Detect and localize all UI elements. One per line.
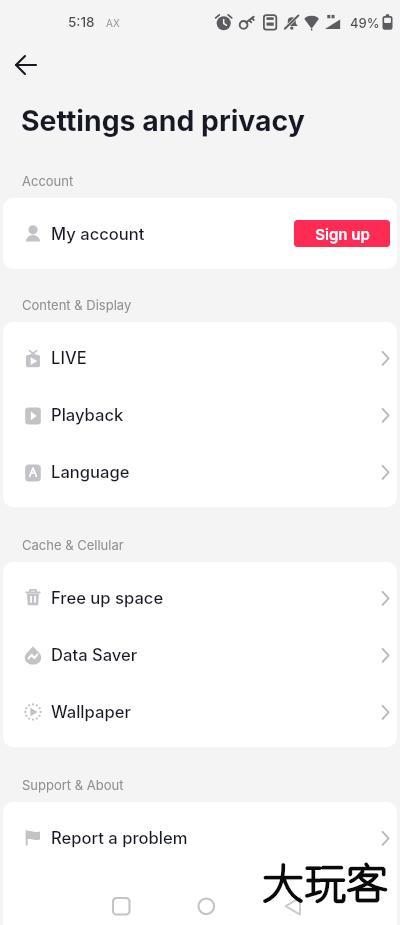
staticText: Settings and privacy xyxy=(21,103,305,137)
staticText: 大玩客 xyxy=(262,858,389,908)
button[interactable]: LIVE xyxy=(3,329,397,386)
button[interactable]: Report a problem xyxy=(3,809,397,866)
staticText: Language xyxy=(51,462,130,482)
button[interactable]: Free up space xyxy=(3,569,397,626)
staticText: Data Saver xyxy=(51,645,138,665)
staticText: 5:18 xyxy=(68,14,95,30)
staticText: Playback xyxy=(51,405,124,425)
button[interactable]: Recent apps xyxy=(102,887,139,924)
staticText: 49% xyxy=(350,15,380,31)
staticText: 大玩客 xyxy=(262,858,389,908)
staticText: Content & Display xyxy=(22,297,132,313)
button[interactable]: Back xyxy=(11,52,41,82)
button[interactable]: Back xyxy=(274,887,311,924)
button[interactable]: Playback xyxy=(3,386,397,443)
button[interactable]: My account xyxy=(3,205,397,262)
staticText: Sign up xyxy=(315,225,370,243)
staticText: Support & About xyxy=(22,777,124,793)
staticText: My account xyxy=(51,224,145,244)
button[interactable]: Language xyxy=(3,443,397,500)
staticText: Wallpaper xyxy=(51,702,131,722)
button[interactable]: Sign up xyxy=(294,220,390,247)
staticText: AX xyxy=(106,17,120,29)
button[interactable]: Home xyxy=(187,887,224,924)
staticText: Report a problem xyxy=(51,828,188,848)
button[interactable]: Wallpaper xyxy=(3,683,397,740)
staticText: Account xyxy=(22,173,74,189)
staticText: LIVE xyxy=(51,348,87,368)
button[interactable]: Data Saver xyxy=(3,626,397,683)
staticText: Cache & Cellular xyxy=(22,537,124,553)
staticText: Free up space xyxy=(51,588,164,608)
